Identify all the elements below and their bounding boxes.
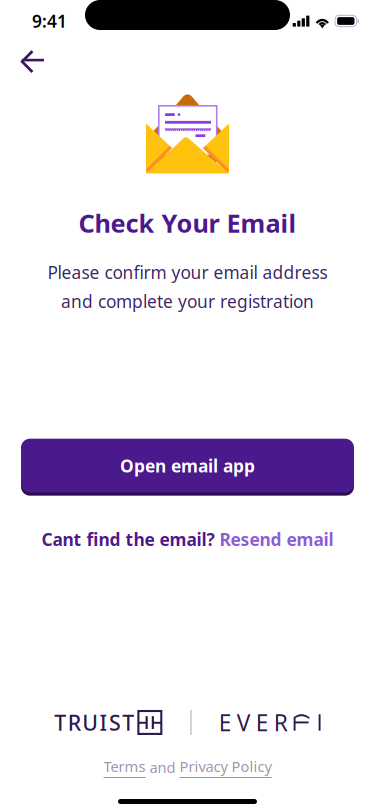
staticText: Resend email [219,528,333,551]
staticText: T [122,708,134,737]
staticText: Check Your Email [78,206,296,240]
staticText: R [68,708,81,737]
staticText: and [149,757,175,777]
staticText: U [82,708,98,737]
button[interactable]: Privacy Policy [179,756,271,778]
button[interactable]: Open email app [21,439,354,496]
button[interactable]: Resend email [219,528,333,551]
staticText: Please confirm your email address [47,261,327,284]
staticText: Privacy Policy [179,756,271,776]
button[interactable]: Back [10,42,55,81]
staticText: E [219,707,232,737]
staticText: I [99,708,107,737]
button[interactable]: Terms [103,756,145,778]
staticText: R [274,707,288,737]
staticText: Open email app [120,454,255,477]
staticText: Terms [103,756,145,776]
staticText: 9:41 [32,9,67,32]
staticText: Cant find the email? [41,528,214,551]
staticText: E [256,707,269,737]
staticText: and complete your registration [61,290,314,313]
staticText: V [237,707,251,737]
staticText: S [109,708,121,737]
staticText: T [54,708,66,737]
